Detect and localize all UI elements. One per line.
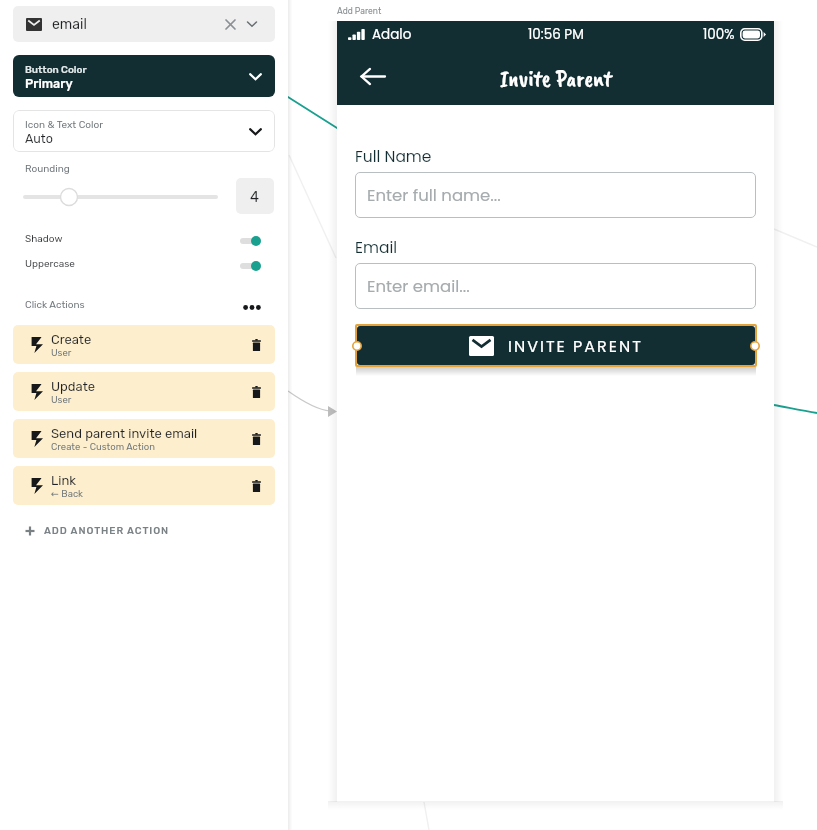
staticText: Shadow — [25, 233, 63, 245]
button[interactable]: 4 — [236, 178, 274, 214]
button[interactable]: Delete action — [239, 325, 273, 364]
button[interactable]: Button Color — [13, 55, 275, 97]
staticText: Click Actions — [25, 299, 85, 311]
button[interactable]: Delete action — [239, 372, 273, 411]
staticText: Create - Custom Action — [51, 441, 155, 452]
button[interactable]: Link — [13, 466, 275, 505]
button[interactable]: Delete action — [239, 419, 273, 458]
staticText: INVITE PARENT — [508, 335, 643, 357]
staticText: Update — [51, 379, 96, 394]
staticText: Rounding — [25, 163, 70, 175]
staticText: Email — [355, 237, 398, 259]
staticText: 100% — [703, 25, 735, 44]
button[interactable]: email — [13, 6, 275, 42]
button[interactable]: Send parent invite email — [13, 419, 275, 458]
button[interactable]: More options — [240, 295, 264, 319]
staticText: Auto — [25, 131, 53, 146]
button[interactable]: Enter full name... — [355, 172, 756, 218]
staticText: Enter full name... — [367, 184, 501, 207]
button[interactable]: Choose icon — [240, 6, 264, 42]
staticText: Primary — [25, 76, 73, 91]
staticText: Button Color — [25, 64, 87, 76]
staticText: Invite Parent — [500, 63, 612, 93]
staticText: Send parent invite email — [51, 426, 198, 441]
button[interactable]: Toggle — [239, 259, 263, 273]
staticText: Enter email... — [367, 275, 470, 298]
button[interactable]: Create — [13, 325, 275, 364]
button[interactable]: INVITE PARENT — [355, 324, 757, 367]
button[interactable]: Update — [13, 372, 275, 411]
staticText: 10:56 PM — [528, 25, 584, 44]
staticText: 4 — [250, 188, 260, 205]
staticText: email — [52, 16, 87, 33]
button[interactable]: Clear — [219, 6, 241, 42]
staticText: Uppercase — [25, 258, 75, 270]
button[interactable]: Back — [355, 59, 389, 93]
button[interactable]: Delete action — [239, 466, 273, 505]
button[interactable]: Enter email... — [355, 263, 756, 309]
staticText: ← Back — [51, 488, 84, 499]
staticText: Icon & Text Color — [25, 119, 104, 131]
staticText: Adalo — [372, 25, 412, 44]
button[interactable]: Icon & Text Color — [13, 110, 275, 152]
staticText: Link — [51, 473, 77, 488]
staticText: User — [51, 347, 72, 358]
staticText: Full Name — [355, 146, 432, 168]
staticText: Add Parent — [337, 6, 382, 16]
staticText: Create — [51, 332, 92, 347]
staticText: ADD ANOTHER ACTION — [44, 525, 170, 537]
button[interactable]: Toggle — [239, 234, 263, 248]
button[interactable]: ADD ANOTHER ACTION — [25, 520, 170, 542]
button[interactable]: Rounding slider — [20, 186, 221, 208]
staticText: User — [51, 394, 72, 405]
